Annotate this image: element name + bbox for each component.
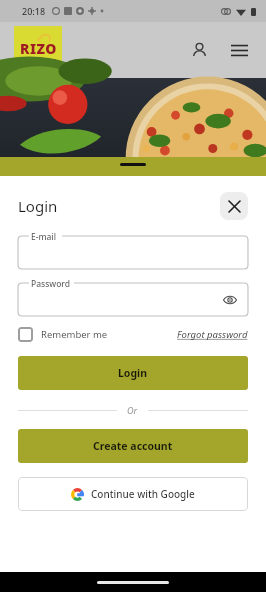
staticText: Or: [127, 404, 138, 416]
staticText: 20:18: [22, 5, 46, 17]
button[interactable]: Show password: [220, 290, 240, 310]
button[interactable]: Forgot password: [177, 328, 248, 341]
button[interactable]: Account: [186, 37, 212, 63]
button[interactable]: Remember me: [18, 327, 108, 342]
staticText: Remember me: [41, 328, 108, 341]
staticText: E-mail: [31, 231, 56, 243]
staticText: Continue with Google: [91, 487, 195, 501]
staticText: RIZO: [20, 39, 57, 58]
button[interactable]: Menu: [226, 37, 252, 63]
staticText: Forgot password: [177, 328, 248, 341]
staticText: Login: [18, 196, 58, 216]
staticText: Create account: [93, 439, 173, 453]
staticText: Password: [31, 278, 71, 290]
button[interactable]: Rizo Pizza home: [14, 26, 62, 75]
staticText: Login: [118, 366, 148, 380]
button[interactable]: Create account: [18, 429, 248, 463]
button[interactable]: Close: [220, 192, 248, 220]
button[interactable]: Login: [18, 356, 248, 390]
staticText: PIZZA: [29, 60, 50, 68]
button[interactable]: Continue with Google: [18, 477, 248, 511]
